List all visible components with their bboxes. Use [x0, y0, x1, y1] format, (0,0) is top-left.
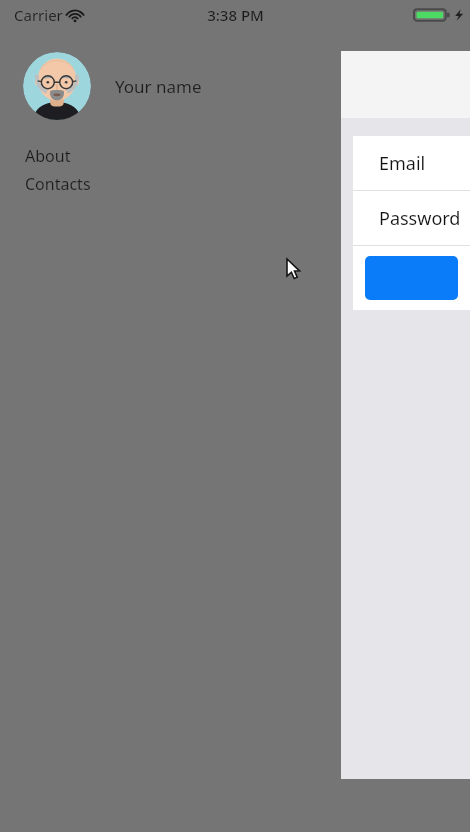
staticText: Password — [379, 206, 461, 231]
button[interactable]: Contacts — [0, 170, 338, 198]
button[interactable]: About — [0, 142, 338, 170]
button[interactable]: Password — [353, 191, 470, 245]
button[interactable]: Email — [353, 136, 470, 190]
staticText: Contacts — [25, 173, 91, 195]
staticText: 3:38 PM — [207, 5, 264, 25]
staticText: About — [25, 145, 71, 167]
button[interactable]: Sign in — [365, 256, 458, 300]
staticText: Carrier — [14, 5, 63, 25]
staticText: Your name — [115, 75, 202, 98]
staticText: Email — [379, 151, 426, 176]
